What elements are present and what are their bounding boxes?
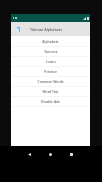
- button[interactable]: Back: [23, 148, 35, 160]
- button[interactable]: Recent apps: [65, 148, 77, 160]
- staticText: Alphabets: [42, 39, 59, 44]
- staticText: Exercise: [44, 49, 58, 54]
- button[interactable]: Learn: [11, 57, 90, 66]
- button[interactable]: Practice: [11, 67, 90, 76]
- button[interactable]: App icon: [17, 27, 20, 32]
- button[interactable]: Word Test: [11, 87, 90, 96]
- staticText: Learn: [46, 59, 56, 64]
- button[interactable]: Disable Ads: [11, 97, 90, 106]
- button[interactable]: Common Words: [11, 77, 90, 86]
- button[interactable]: Home: [44, 148, 56, 160]
- staticText: Disable Ads: [41, 99, 60, 104]
- staticText: Practice: [44, 69, 57, 74]
- button[interactable]: Exercise: [11, 47, 90, 56]
- staticText: Tibetan Alphabets: [30, 27, 62, 32]
- staticText: Word Test: [42, 89, 59, 94]
- staticText: Common Words: [37, 79, 64, 84]
- button[interactable]: Alphabets: [11, 37, 90, 46]
